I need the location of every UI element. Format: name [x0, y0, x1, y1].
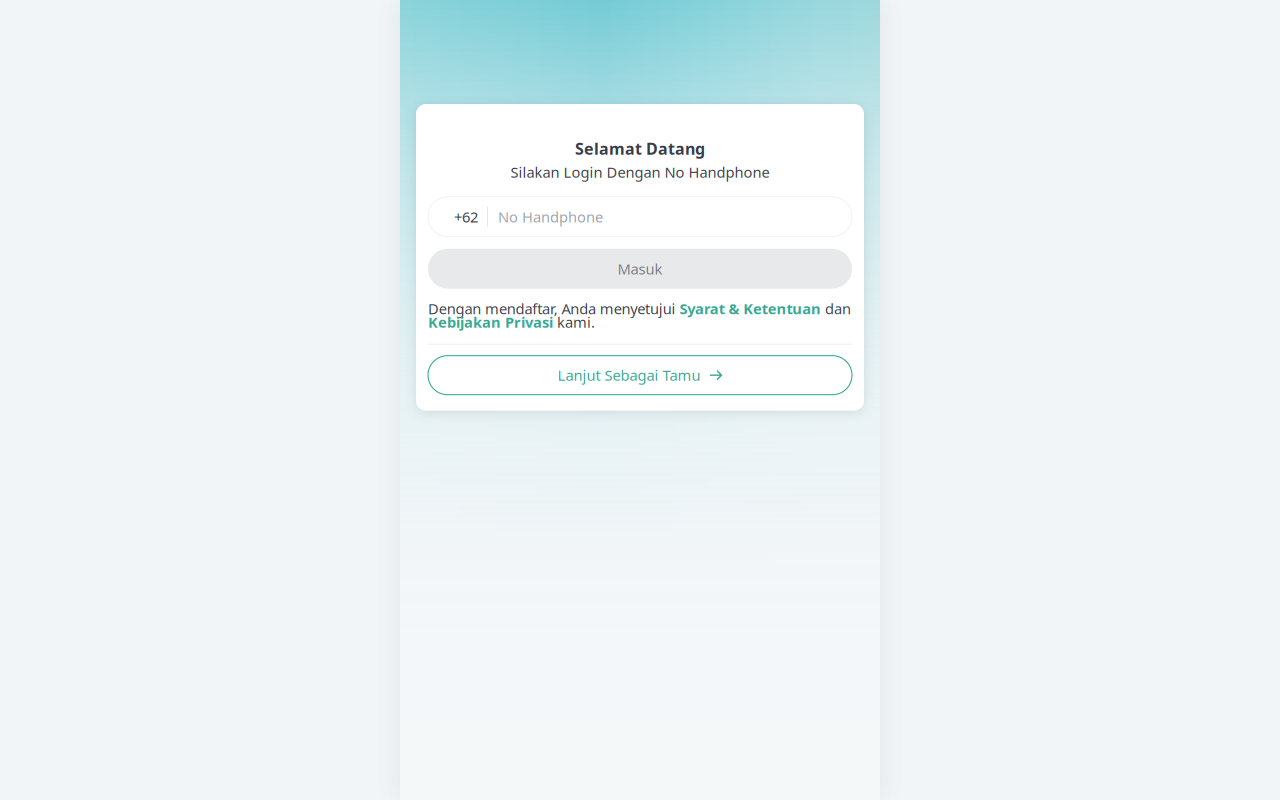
- button[interactable]: Masuk: [428, 249, 852, 289]
- staticText: +62: [454, 207, 478, 226]
- staticText: Masuk: [617, 259, 662, 278]
- staticText: Kebijakan Privasi: [428, 312, 553, 332]
- staticText: kami.: [553, 312, 595, 332]
- staticText: Syarat & Ketentuan: [679, 299, 821, 318]
- staticText: No Handphone: [498, 207, 603, 226]
- staticText: dan: [821, 299, 851, 318]
- staticText: Silakan Login Dengan No Handphone: [510, 162, 769, 182]
- button[interactable]: Lanjut Sebagai Tamu: [428, 356, 852, 395]
- button[interactable]: Syarat & Ketentuan: [679, 299, 821, 318]
- staticText: Dengan mendaftar, Anda menyetujui: [428, 299, 679, 318]
- button[interactable]: Kebijakan Privasi: [428, 312, 553, 332]
- staticText: Selamat Datang: [575, 138, 705, 159]
- staticText: Lanjut Sebagai Tamu: [557, 365, 700, 385]
